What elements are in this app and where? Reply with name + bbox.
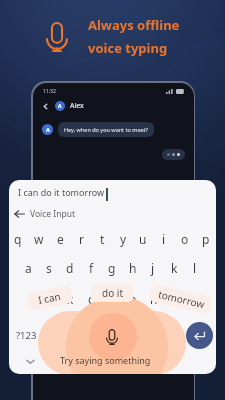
button[interactable]: g [103, 259, 121, 277]
button[interactable]: d [61, 259, 79, 277]
button[interactable]: Voice Input [14, 205, 76, 223]
staticText: g [108, 260, 116, 276]
button[interactable]: x [61, 290, 79, 308]
staticText: q [14, 231, 22, 247]
staticText: w [34, 231, 44, 247]
button[interactable]: Voice input microphone [106, 329, 118, 345]
staticText: A [58, 103, 62, 110]
staticText: x [67, 291, 74, 307]
staticText: n [150, 291, 158, 307]
staticText: a [25, 260, 32, 276]
button[interactable]: z [40, 290, 58, 308]
staticText: Alex [70, 101, 84, 111]
staticText: y [120, 231, 127, 247]
button[interactable]: e [51, 230, 69, 248]
staticText: Always offline [88, 16, 180, 34]
staticText: j [151, 260, 155, 276]
button[interactable]: n [145, 290, 163, 308]
button[interactable]: Microphone [46, 22, 68, 52]
staticText: l [193, 260, 197, 276]
staticText: c [88, 291, 94, 307]
staticText: h [129, 260, 137, 276]
button[interactable]: y [114, 230, 132, 248]
button[interactable]: t [93, 230, 111, 248]
button[interactable]: s [40, 259, 58, 277]
button[interactable]: l [186, 259, 204, 277]
staticText: Try saying something [60, 354, 151, 366]
staticText: voice typing [88, 39, 168, 57]
staticText: do it [102, 286, 123, 300]
staticText: t [100, 231, 105, 247]
staticText: v [109, 291, 116, 307]
button[interactable]: m [165, 290, 183, 308]
staticText: 11:32 [43, 88, 56, 95]
button[interactable]: c [82, 290, 100, 308]
staticText: I can do it tomorrow [18, 186, 105, 198]
button[interactable]: u [134, 230, 152, 248]
staticText: b [129, 291, 137, 307]
button[interactable]: ?123 [16, 328, 38, 342]
staticText: d [66, 260, 74, 276]
button[interactable]: a [19, 259, 37, 277]
staticText: m [168, 291, 180, 307]
staticText: s [46, 260, 52, 276]
button[interactable]: w [30, 230, 48, 248]
staticText: r [79, 231, 84, 247]
button[interactable]: j [144, 259, 162, 277]
button[interactable]: Enter [186, 322, 213, 349]
button[interactable]: f [82, 259, 100, 277]
button[interactable]: Hide keyboard [24, 355, 37, 368]
button[interactable]: v [103, 290, 121, 308]
button[interactable]: o [176, 230, 194, 248]
button[interactable]: b [124, 290, 142, 308]
staticText: tomorrow [157, 287, 206, 311]
button[interactable]: k [165, 259, 183, 277]
staticText: i [162, 231, 166, 247]
staticText: Hey, when do you want to meet? [64, 126, 148, 133]
staticText: Voice Input [30, 208, 76, 220]
staticText: o [181, 231, 189, 247]
button[interactable]: tomorrow [149, 283, 213, 315]
button[interactable]: p [197, 230, 215, 248]
staticText: p [202, 231, 210, 247]
button[interactable]: I can [26, 285, 73, 311]
staticText: A [46, 126, 50, 133]
button[interactable]: r [72, 230, 90, 248]
button[interactable]: i [155, 230, 173, 248]
staticText: I can [37, 289, 62, 307]
button[interactable]: q [9, 230, 27, 248]
staticText: u [139, 231, 147, 247]
staticText: z [46, 291, 52, 307]
button[interactable]: do it [91, 284, 133, 302]
staticText: ?123 [16, 329, 37, 342]
button[interactable]: h [124, 259, 142, 277]
staticText: e [57, 231, 64, 247]
staticText: k [171, 260, 178, 276]
staticText: f [89, 260, 94, 276]
